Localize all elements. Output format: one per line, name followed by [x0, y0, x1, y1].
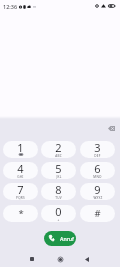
staticText: ABC: [55, 154, 62, 158]
button[interactable]: 2: [41, 141, 76, 158]
staticText: 3: [94, 141, 101, 155]
staticText: DEF: [94, 154, 101, 158]
button[interactable]: 5: [41, 162, 76, 179]
button[interactable]: #: [80, 205, 115, 222]
button[interactable]: Recent apps: [26, 253, 38, 265]
staticText: *: [18, 207, 24, 220]
button[interactable]: 8: [41, 183, 76, 200]
button[interactable]: 4: [3, 162, 38, 179]
button[interactable]: Backspace: [103, 120, 119, 136]
staticText: PQRS: [16, 196, 25, 200]
staticText: Anruf: [60, 235, 74, 242]
button[interactable]: *: [3, 205, 38, 222]
staticText: 4: [17, 162, 24, 176]
staticText: #: [94, 207, 101, 220]
button[interactable]: 0: [41, 205, 76, 222]
staticText: 2: [55, 141, 62, 155]
button[interactable]: Back: [81, 253, 93, 265]
staticText: TUV: [55, 196, 62, 200]
staticText: GHI: [17, 175, 24, 179]
button[interactable]: 1: [3, 141, 38, 158]
staticText: 9: [94, 183, 101, 197]
staticText: 7: [17, 183, 24, 197]
staticText: 6: [94, 162, 101, 176]
staticText: +: [57, 218, 60, 222]
staticText: 1: [17, 141, 24, 155]
staticText: JKL: [56, 175, 62, 179]
button[interactable]: Anruf: [44, 231, 76, 246]
staticText: 5: [55, 162, 62, 176]
button[interactable]: 9: [80, 183, 115, 200]
staticText: WXYZ: [93, 196, 103, 200]
button[interactable]: 3: [80, 141, 115, 158]
button[interactable]: Home: [54, 253, 66, 265]
button[interactable]: 7: [3, 183, 38, 200]
staticText: 0: [55, 205, 62, 219]
staticText: MNO: [93, 175, 102, 179]
staticText: 12:36: [3, 3, 18, 10]
button[interactable]: 6: [80, 162, 115, 179]
staticText: 8: [55, 183, 62, 197]
